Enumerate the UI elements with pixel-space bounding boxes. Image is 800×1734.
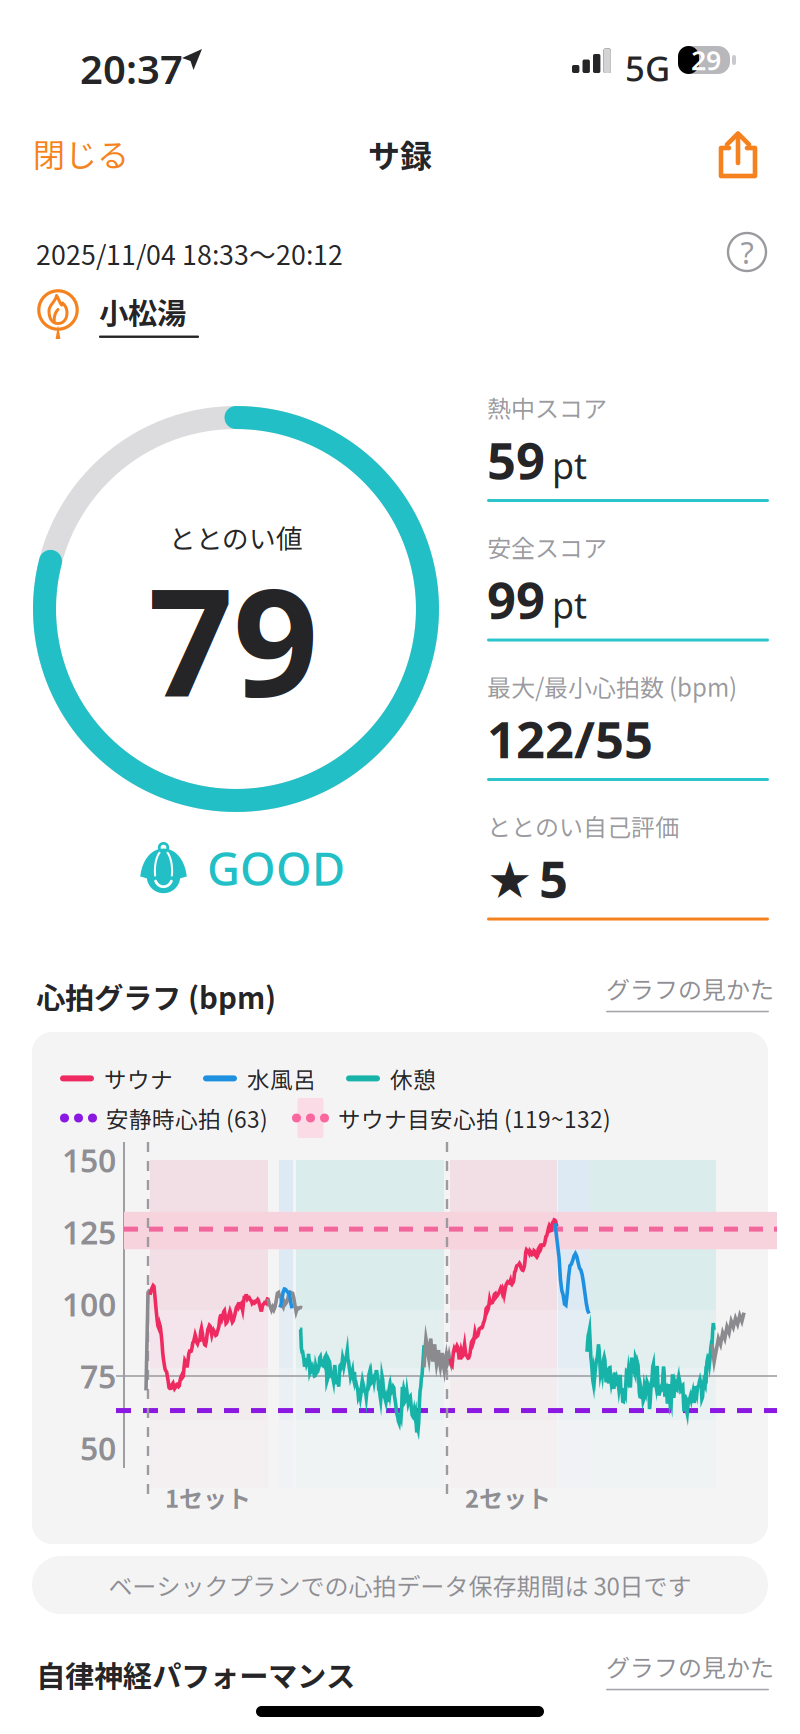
staticText: 自律神経パフォーマンス — [36, 1653, 355, 1695]
button[interactable]: 小松湯 — [36, 286, 199, 342]
button[interactable]: Share — [706, 127, 770, 183]
button[interactable]: 閉じる — [33, 124, 153, 182]
staticText: 29 — [691, 42, 721, 78]
staticText: 125 — [62, 1211, 116, 1253]
staticText: 50 — [80, 1427, 116, 1469]
staticText: 100 — [62, 1283, 116, 1325]
staticText: 水風呂 — [247, 1062, 316, 1095]
staticText: 最大/最小心拍数 (bpm) — [487, 669, 737, 704]
staticText: ? — [740, 232, 753, 272]
staticText: ベーシックプランでの心拍データ保存期間は 30日です — [108, 1568, 691, 1602]
staticText: サウナ目安心拍 (119~132) — [338, 1102, 611, 1134]
staticText: 5G — [625, 45, 670, 91]
staticText: 熱中スコア — [487, 390, 607, 425]
staticText: 1セット — [165, 1480, 251, 1515]
staticText: 75 — [80, 1355, 116, 1397]
staticText: 2025/11/04 18:33〜20:12 — [36, 234, 343, 273]
staticText: pt — [552, 581, 587, 629]
staticText: 閉じる — [33, 130, 129, 176]
staticText: グラフの見かた — [606, 971, 774, 1006]
button[interactable]: グラフの見かた — [606, 1649, 774, 1690]
staticText: グラフの見かた — [606, 1649, 774, 1684]
staticText: 122/55 — [487, 705, 653, 772]
staticText: 心拍グラフ (bpm) — [36, 975, 276, 1017]
staticText: 5 — [539, 844, 568, 912]
staticText: pt — [552, 441, 587, 489]
staticText: サウナ — [104, 1062, 173, 1095]
staticText: GOOD — [207, 838, 345, 898]
staticText: 59 — [487, 426, 545, 493]
staticText: 99 — [487, 565, 545, 633]
button[interactable]: グラフの見かた — [606, 971, 774, 1012]
staticText: 2セット — [465, 1480, 551, 1515]
staticText: ★ — [487, 851, 532, 909]
staticText: ととのい自己評価 — [487, 808, 679, 843]
staticText: 20:37 — [80, 42, 183, 95]
staticText: 150 — [62, 1139, 116, 1181]
staticText: サ録 — [368, 131, 432, 177]
staticText: 小松湯 — [99, 290, 186, 333]
staticText: 休憩 — [390, 1062, 436, 1095]
staticText: 安全スコア — [487, 529, 607, 564]
staticText: 79 — [148, 540, 318, 738]
button[interactable]: Help — [724, 229, 770, 275]
staticText: ととのい値 — [169, 518, 303, 556]
staticText: 安静時心拍 (63) — [106, 1102, 268, 1134]
